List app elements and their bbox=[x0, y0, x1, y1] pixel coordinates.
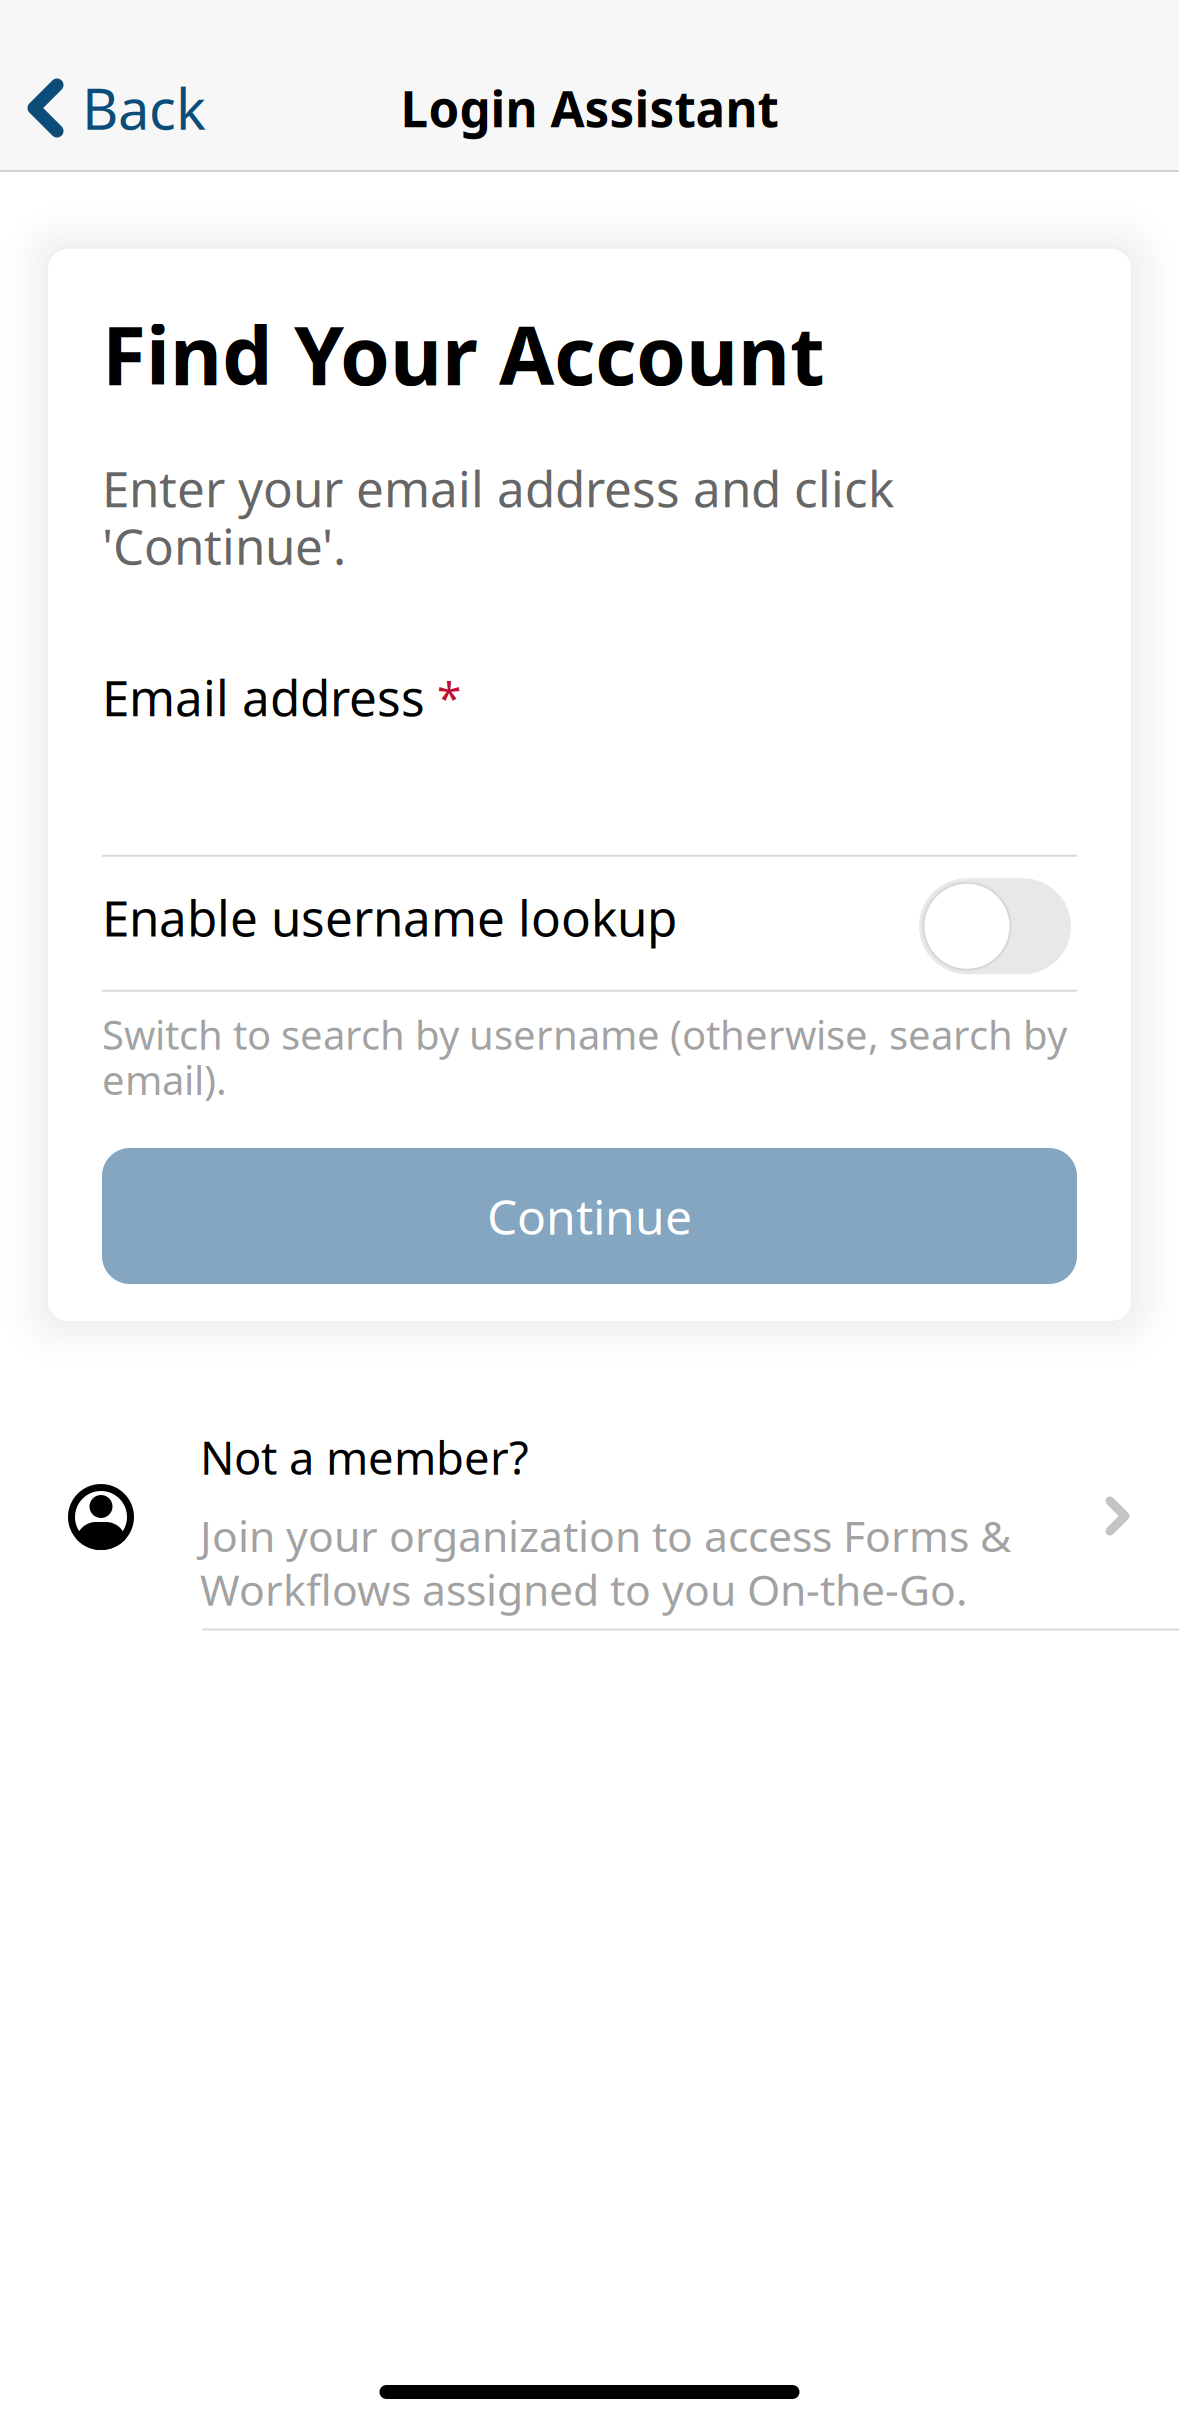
button[interactable]: Back bbox=[0, 44, 228, 172]
staticText: Email address bbox=[102, 664, 425, 730]
button[interactable]: Continue bbox=[102, 1148, 1077, 1284]
button[interactable]: Enable username lookup bbox=[919, 878, 1071, 974]
staticText: Not a member? bbox=[200, 1427, 529, 1487]
staticText: Enter your email address and click 'Cont… bbox=[102, 455, 894, 578]
staticText: * bbox=[437, 668, 461, 726]
button[interactable]: Email address bbox=[102, 664, 1077, 857]
staticText: Join your organization to access Forms &… bbox=[200, 1507, 1011, 1617]
staticText: Switch to search by username (otherwise,… bbox=[102, 1008, 1067, 1106]
staticText: Back bbox=[82, 71, 206, 145]
staticText: Continue bbox=[487, 1184, 692, 1248]
staticText: Enable username lookup bbox=[102, 884, 677, 950]
staticText: Find Your Account bbox=[102, 301, 825, 407]
staticText: Login Assistant bbox=[400, 75, 778, 141]
button[interactable]: Not a member? bbox=[0, 1427, 1179, 1630]
